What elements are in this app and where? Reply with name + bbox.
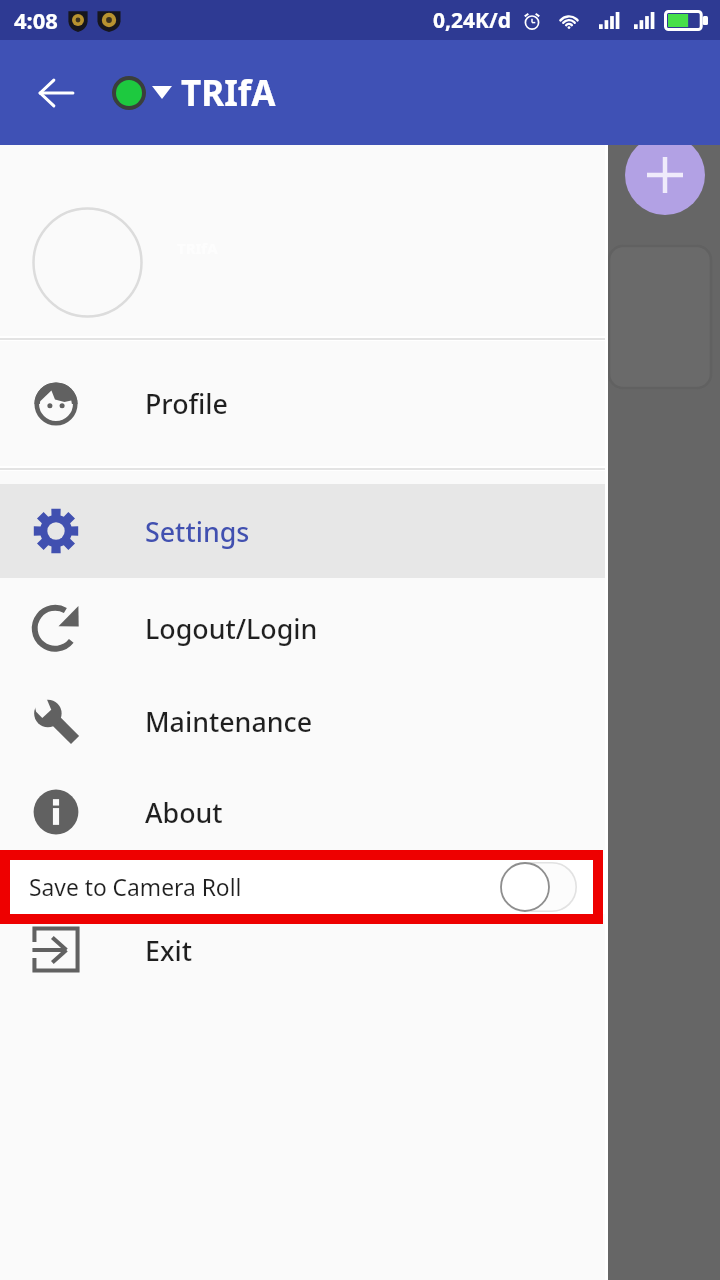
button[interactable]: About (0, 764, 608, 860)
button[interactable]: Back (28, 65, 84, 121)
button[interactable]: Settings (0, 484, 608, 578)
staticText: Settings (145, 513, 250, 550)
button[interactable]: Save to Camera Roll (0, 860, 608, 914)
staticText: Logout/Login (145, 610, 318, 647)
staticText: About (145, 794, 223, 831)
staticText: Profile (145, 385, 228, 422)
button[interactable]: Profile (0, 341, 608, 466)
button[interactable]: Exit (0, 914, 608, 986)
staticText: Save to Camera Roll (29, 872, 242, 903)
button[interactable]: Logout/Login (0, 578, 608, 678)
button[interactable]: Maintenance (0, 678, 608, 764)
staticText: Exit (145, 932, 192, 969)
staticText: TRIfA (181, 69, 276, 117)
staticText: Maintenance (145, 703, 313, 740)
staticText: 0,24K/d (433, 6, 511, 35)
staticText: 4:08 (14, 5, 58, 35)
button[interactable]: Add (625, 135, 705, 215)
